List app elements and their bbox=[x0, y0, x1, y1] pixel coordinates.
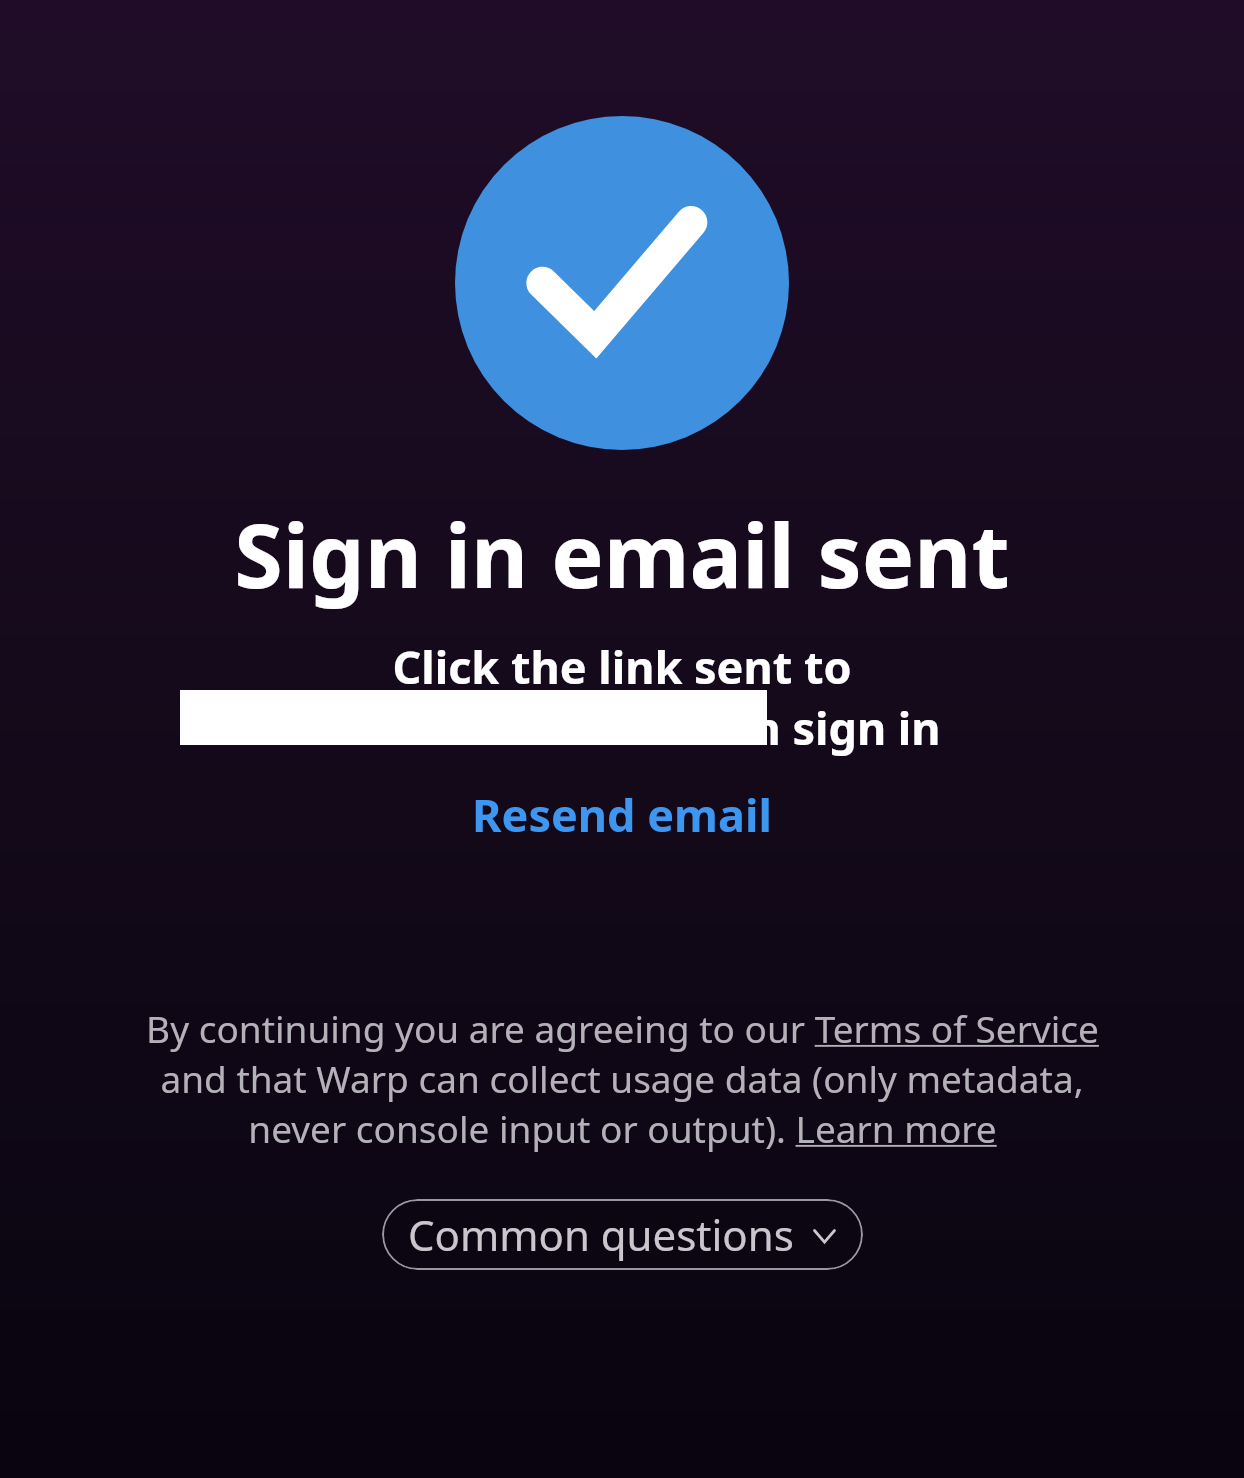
button[interactable]: never console input or output). Learn mo… bbox=[248, 1103, 997, 1153]
staticText: to finish sign in bbox=[303, 697, 941, 758]
staticText: never console input or output). Learn mo… bbox=[248, 1103, 997, 1153]
staticText: By continuing you are agreeing to our Te… bbox=[146, 1003, 1099, 1053]
button[interactable]: Resend email bbox=[458, 778, 786, 851]
staticText: and that Warp can collect usage data (on… bbox=[160, 1053, 1084, 1103]
button[interactable]: Common questions bbox=[382, 1199, 863, 1270]
button[interactable]: By continuing you are agreeing to our Te… bbox=[146, 1003, 1099, 1053]
staticText: Common questions bbox=[408, 1206, 794, 1263]
staticText: Sign in email sent bbox=[234, 494, 1010, 614]
staticText: Click the link sent to bbox=[392, 636, 852, 697]
other: Expand common questions bbox=[812, 1219, 837, 1251]
staticText: Resend email bbox=[472, 784, 772, 845]
